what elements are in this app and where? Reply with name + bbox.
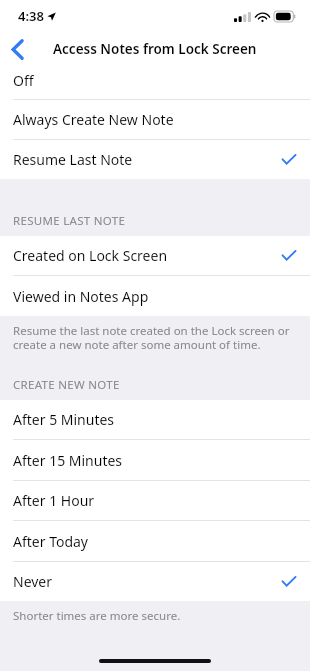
staticText: After Today [13, 532, 296, 551]
button[interactable]: Resume Last Note [0, 140, 310, 179]
staticText: Access Notes from Lock Screen [53, 40, 257, 58]
button[interactable]: Never [0, 562, 310, 601]
staticText: Always Create New Note [13, 110, 296, 129]
button[interactable]: After 15 Minutes [0, 440, 310, 480]
button[interactable]: Always Create New Note [0, 100, 310, 139]
button[interactable]: Off [0, 66, 310, 99]
staticText: Created on Lock Screen [13, 246, 282, 265]
staticText: Off [13, 71, 34, 90]
staticText: Resume Last Note [13, 150, 282, 169]
staticText: Resume the last note created on the Lock… [13, 323, 297, 353]
staticText: After 15 Minutes [13, 451, 296, 470]
button[interactable]: Viewed in Notes App [0, 276, 310, 316]
staticText: CREATE NEW NOTE [13, 377, 120, 393]
staticText: RESUME LAST NOTE [13, 213, 126, 229]
staticText: Viewed in Notes App [13, 287, 296, 306]
staticText: After 1 Hour [13, 491, 296, 510]
button[interactable]: After Today [0, 521, 310, 561]
button[interactable]: After 1 Hour [0, 481, 310, 520]
button[interactable]: Back [0, 32, 34, 66]
staticText: Shorter times are more secure. [13, 608, 181, 624]
staticText: 4:38 [18, 7, 44, 25]
staticText: Never [13, 572, 282, 591]
staticText: After 5 Minutes [13, 410, 296, 429]
button[interactable]: After 5 Minutes [0, 400, 310, 439]
button[interactable]: Created on Lock Screen [0, 236, 310, 275]
